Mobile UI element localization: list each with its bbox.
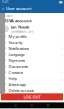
- staticText: Delete account: [8, 88, 33, 93]
- staticText: ›: [61, 76, 62, 81]
- button[interactable]: My profile: [0, 33, 64, 39]
- button[interactable]: Language: [0, 51, 64, 57]
- staticText: Notifications: [8, 46, 29, 51]
- staticText: Documents: [8, 64, 28, 69]
- staticText: Security: [8, 40, 22, 45]
- button[interactable]: Help: [0, 75, 64, 81]
- staticText: Language: [8, 52, 24, 57]
- staticText: Payments: [8, 58, 25, 63]
- staticText: □: [47, 104, 50, 107]
- staticText: ◁: [14, 104, 16, 107]
- button[interactable]: Contacts: [0, 69, 64, 75]
- staticText: ›: [61, 88, 62, 93]
- staticText: PRIVATE: [2, 14, 12, 17]
- staticText: PRIVA account: [2, 18, 32, 23]
- staticText: User account: [6, 6, 32, 11]
- staticText: LOG OUT: [23, 94, 40, 99]
- staticText: ›: [61, 82, 62, 87]
- staticText: Help: [8, 76, 16, 81]
- staticText: ›: [61, 34, 62, 39]
- staticText: Jan Novak: [11, 24, 29, 29]
- staticText: My profile: [8, 34, 26, 39]
- staticText: About app: [8, 82, 25, 87]
- staticText: ›: [61, 46, 62, 51]
- staticText: ›: [61, 52, 62, 57]
- button[interactable]: Security: [0, 39, 64, 45]
- staticText: ▮▮▮: [59, 0, 62, 3]
- staticText: ›: [61, 40, 62, 45]
- staticText: ‹: [2, 5, 4, 12]
- staticText: ›: [61, 70, 62, 75]
- staticText: Contacts: [8, 70, 23, 75]
- staticText: ›: [61, 64, 62, 69]
- button[interactable]: Documents: [0, 63, 64, 69]
- staticText: ○: [30, 104, 32, 107]
- button[interactable]: LOG OUT: [1, 93, 63, 100]
- button[interactable]: About app: [0, 81, 64, 87]
- button[interactable]: Notifications: [0, 45, 64, 51]
- button[interactable]: Jan Novak: [0, 24, 64, 33]
- staticText: 9:41: [2, 0, 9, 4]
- button[interactable]: Payments: [0, 57, 64, 63]
- button[interactable]: Delete account: [0, 87, 64, 93]
- staticText: jan@example.com: [11, 30, 33, 33]
- staticText: ›: [61, 58, 62, 63]
